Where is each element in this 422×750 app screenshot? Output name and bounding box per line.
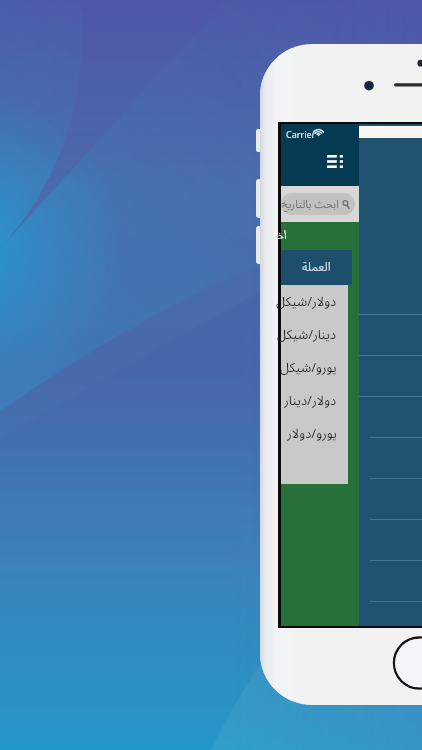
staticText: يورو/شيكل [280, 354, 337, 381]
button[interactable]: دينار/شيكل [281, 318, 348, 351]
staticText: دولار/دينار [284, 387, 337, 414]
button[interactable]: يورو/دولار [281, 417, 348, 450]
button[interactable]: ابحث بالتاريخ [281, 193, 355, 215]
button[interactable]: دولار/دينار [281, 384, 348, 417]
button[interactable]: أخبار [281, 222, 359, 250]
staticText: دينار/شيكل [277, 321, 337, 348]
button[interactable]: العملة [281, 250, 352, 285]
button[interactable]: Menu [324, 151, 345, 171]
button[interactable]: يورو/شيكل [281, 351, 348, 384]
button[interactable] [281, 560, 422, 601]
staticText: دولار/شيكل [276, 288, 337, 315]
button[interactable] [281, 396, 422, 437]
button[interactable]: الخدمات المصرفية و الحوالات المالية [281, 314, 422, 355]
staticText: يورو/دولار [287, 420, 337, 447]
staticText: ابحث بالتاريخ [281, 193, 339, 215]
button[interactable] [281, 519, 422, 560]
button[interactable]: الخدمات المصرفية والحوالات المالية [281, 355, 422, 396]
button[interactable] [281, 601, 422, 642]
staticText: العملة [302, 255, 331, 280]
staticText: Carrier [286, 128, 316, 140]
button[interactable]: Volume up [256, 179, 262, 218]
button[interactable]: Mute switch [256, 129, 262, 152]
button[interactable] [281, 478, 422, 519]
button[interactable]: Volume down [256, 226, 262, 264]
button[interactable] [281, 437, 422, 478]
staticText: أخبار [268, 225, 287, 246]
button[interactable]: دولار/شيكل [281, 285, 348, 318]
